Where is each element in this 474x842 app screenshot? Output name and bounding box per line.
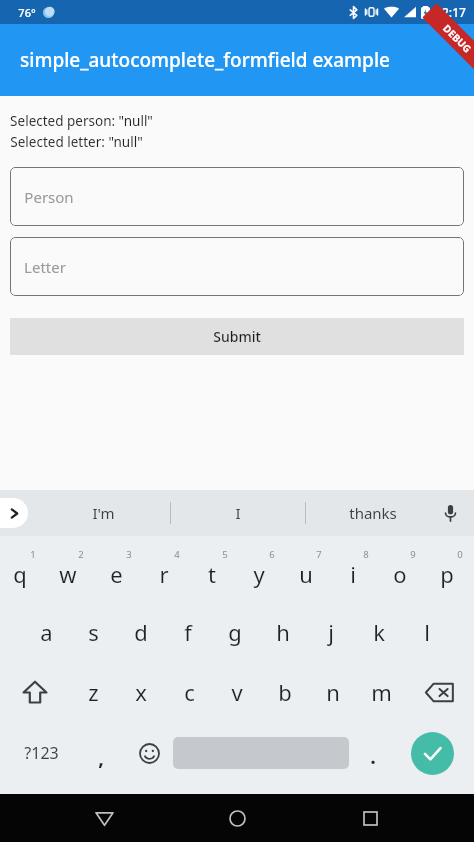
staticText: j: [328, 617, 334, 647]
staticText: I'm: [92, 503, 115, 523]
button[interactable]: Shift: [0, 664, 69, 720]
staticText: 3: [126, 548, 132, 561]
staticText: c: [184, 677, 195, 707]
staticText: 76°: [18, 5, 36, 20]
button[interactable]: z: [69, 664, 117, 720]
button[interactable]: Emoji: [125, 724, 173, 782]
staticText: l: [424, 617, 430, 647]
staticText: q: [13, 559, 27, 589]
staticText: Submit: [213, 327, 261, 346]
button[interactable]: c: [165, 664, 213, 720]
staticText: Person: [24, 187, 74, 207]
staticText: g: [228, 617, 242, 647]
button[interactable]: d: [117, 604, 164, 660]
button[interactable]: Space: [173, 724, 349, 782]
staticText: v: [231, 677, 243, 707]
button[interactable]: Home: [208, 794, 266, 842]
staticText: 12:17: [435, 4, 466, 20]
button[interactable]: g: [211, 604, 259, 660]
staticText: thanks: [349, 503, 397, 523]
button[interactable]: i: [333, 542, 380, 600]
staticText: x: [135, 677, 147, 707]
button[interactable]: w: [48, 542, 96, 600]
staticText: i: [350, 559, 356, 589]
button[interactable]: Letter: [10, 237, 464, 296]
staticText: o: [393, 559, 407, 589]
button[interactable]: I'm: [36, 490, 170, 536]
staticText: .: [370, 743, 376, 770]
staticText: z: [88, 677, 99, 707]
button[interactable]: u: [286, 542, 333, 600]
staticText: 5: [222, 548, 228, 561]
button[interactable]: I: [171, 490, 305, 536]
button[interactable]: p: [427, 542, 474, 600]
staticText: r: [159, 559, 169, 589]
button[interactable]: q: [0, 542, 48, 600]
button[interactable]: Backspace: [405, 664, 474, 720]
button[interactable]: l: [403, 604, 451, 660]
button[interactable]: k: [355, 604, 403, 660]
staticText: e: [110, 559, 123, 589]
button[interactable]: Enter: [397, 724, 468, 782]
button[interactable]: m: [357, 664, 405, 720]
staticText: d: [134, 617, 148, 647]
button[interactable]: o: [380, 542, 427, 600]
staticText: w: [59, 559, 77, 589]
button[interactable]: y: [239, 542, 286, 600]
button[interactable]: ?123: [6, 724, 77, 782]
staticText: Letter: [24, 257, 66, 277]
staticText: a: [40, 617, 53, 647]
button[interactable]: s: [70, 604, 117, 660]
button[interactable]: Recents: [341, 794, 399, 842]
button[interactable]: e: [96, 542, 144, 600]
staticText: 0: [457, 548, 463, 561]
button[interactable]: v: [213, 664, 261, 720]
button[interactable]: r: [144, 542, 192, 600]
staticText: ?123: [24, 742, 59, 764]
staticText: ,: [98, 744, 104, 771]
staticText: n: [326, 677, 340, 707]
staticText: 9: [410, 548, 416, 561]
staticText: b: [278, 677, 292, 707]
button[interactable]: j: [307, 604, 355, 660]
button[interactable]: n: [309, 664, 357, 720]
button[interactable]: thanks: [306, 490, 440, 536]
button[interactable]: Voice input: [435, 498, 465, 528]
staticText: 4: [174, 548, 180, 561]
staticText: s: [88, 617, 99, 647]
staticText: simple_autocomplete_formfield example: [20, 47, 390, 73]
staticText: I: [235, 503, 241, 523]
staticText: t: [208, 559, 216, 589]
button[interactable]: Expand suggestions: [0, 498, 28, 528]
staticText: 7: [316, 548, 322, 561]
staticText: k: [373, 617, 385, 647]
button[interactable]: b: [261, 664, 309, 720]
staticText: 1: [30, 548, 36, 561]
button[interactable]: x: [117, 664, 165, 720]
staticText: DEBUG: [440, 21, 474, 56]
button[interactable]: h: [259, 604, 307, 660]
staticText: h: [276, 617, 290, 647]
staticText: p: [440, 559, 454, 589]
button[interactable]: .: [349, 724, 397, 782]
button[interactable]: f: [164, 604, 211, 660]
staticText: Selected letter: "null": [10, 133, 143, 151]
button[interactable]: ,: [77, 724, 125, 782]
button[interactable]: t: [192, 542, 239, 600]
staticText: 2: [78, 548, 84, 561]
staticText: 6: [269, 548, 275, 561]
staticText: u: [299, 559, 313, 589]
staticText: m: [371, 677, 392, 707]
staticText: 8: [363, 548, 369, 561]
button[interactable]: a: [23, 604, 70, 660]
staticText: Selected person: "null": [10, 112, 153, 130]
staticText: y: [253, 559, 265, 589]
button[interactable]: Back: [75, 794, 133, 842]
button[interactable]: Person: [10, 167, 464, 226]
button[interactable]: Submit: [10, 318, 464, 355]
staticText: f: [184, 617, 192, 647]
